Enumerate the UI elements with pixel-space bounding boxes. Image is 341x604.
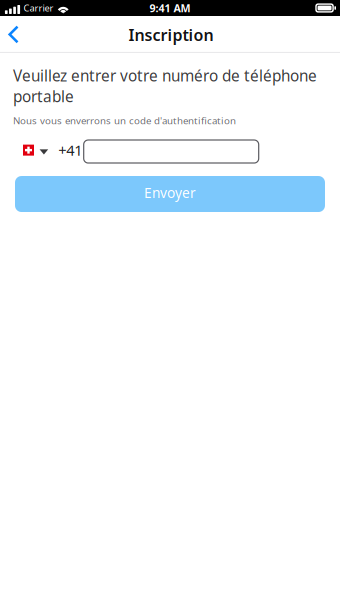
staticText: Nous vous enverrons un code d'authentifi… xyxy=(13,114,236,127)
staticText: Inscription xyxy=(128,24,213,46)
staticText: Envoyer xyxy=(144,183,196,202)
button[interactable]: Choose country code xyxy=(13,141,58,162)
staticText: Veuillez entrer votre numéro de téléphon… xyxy=(13,65,317,107)
staticText: +41 xyxy=(58,140,82,160)
staticText: Carrier xyxy=(23,2,53,14)
button[interactable]: Envoyer xyxy=(15,176,325,212)
staticText: 9:41 AM xyxy=(149,1,190,15)
button[interactable]: Back xyxy=(0,17,33,52)
